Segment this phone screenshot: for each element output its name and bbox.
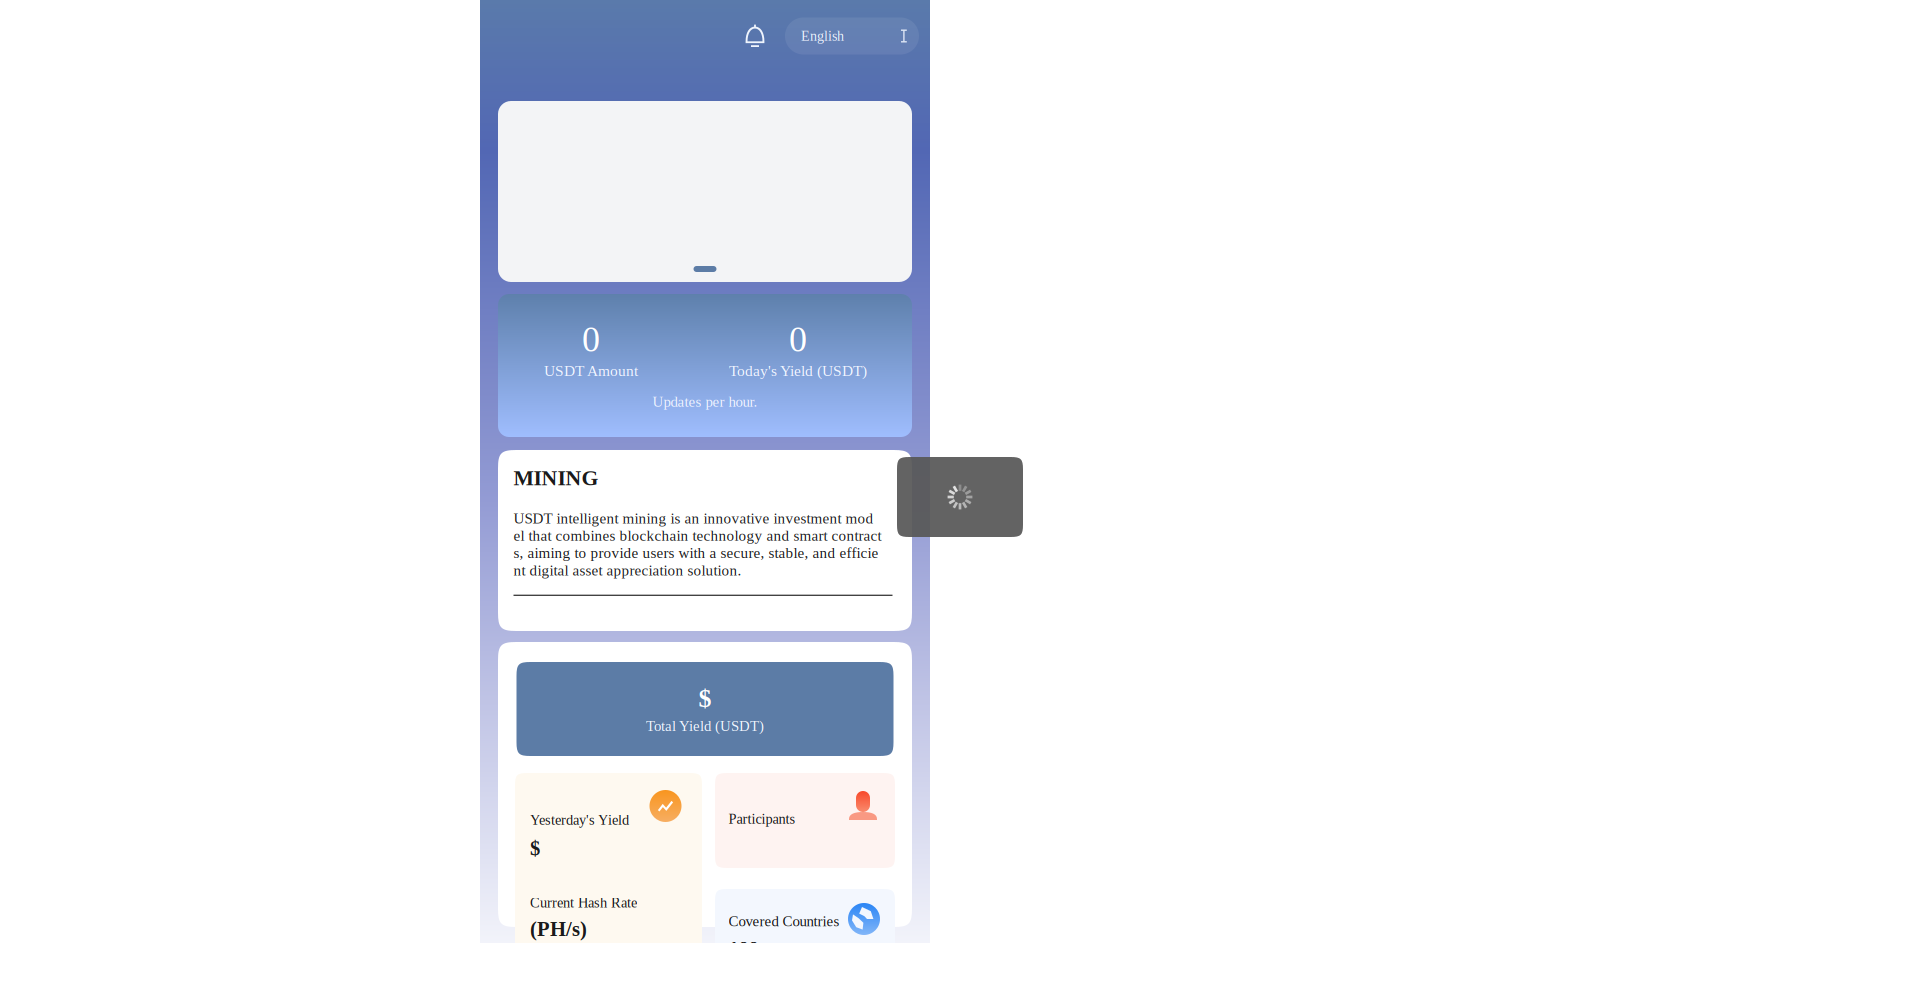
staticText: el that combines blockchain technology a…: [513, 527, 881, 544]
staticText: Today's Yield (USDT): [729, 362, 867, 379]
staticText: $: [530, 837, 540, 860]
staticText: Participants: [728, 811, 795, 827]
staticText: Covered Countries: [728, 913, 839, 929]
staticText: $: [698, 684, 711, 713]
staticText: English: [801, 28, 844, 44]
staticText: USDT Amount: [544, 362, 638, 379]
staticText: 100: [728, 937, 758, 960]
button[interactable]: English: [785, 17, 919, 54]
staticText: (PH/s): [530, 918, 587, 940]
staticText: MINING: [513, 466, 598, 490]
staticText: USDT intelligent mining is an innovative…: [513, 510, 873, 527]
staticText: Total Yield (USDT): [646, 718, 764, 734]
staticText: 0: [789, 319, 807, 359]
staticText: Yesterday's Yield: [530, 812, 629, 828]
staticText: Current Hash Rate: [530, 895, 637, 911]
button[interactable]: Notifications: [738, 17, 772, 55]
staticText: 0: [582, 319, 600, 359]
staticText: s, aiming to provide users with a secure…: [513, 545, 878, 561]
staticText: Updates per hour.: [652, 393, 757, 410]
staticText: nt digital asset appreciation solution.: [513, 562, 741, 579]
